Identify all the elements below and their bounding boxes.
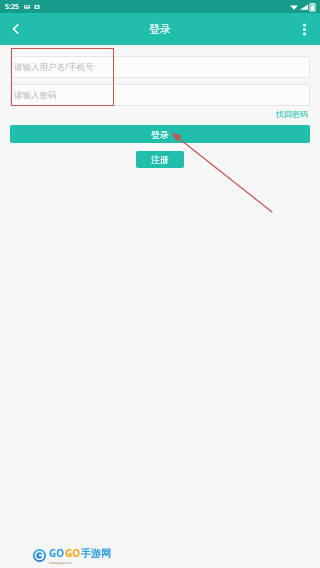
staticText: 请输入密码	[14, 90, 57, 101]
button[interactable]: 返回	[0, 13, 32, 45]
button[interactable]: 注册	[136, 151, 184, 168]
staticText: GO	[65, 546, 81, 560]
staticText: 找回密码	[276, 109, 308, 119]
button[interactable]: 更多选项	[288, 13, 320, 45]
button[interactable]: 登录	[10, 125, 310, 143]
staticText: 请输入用户名/手机号	[14, 61, 94, 73]
staticText: 登录	[151, 129, 169, 140]
button[interactable]: 请输入密码	[10, 84, 310, 106]
staticText: 登录	[149, 22, 171, 36]
button[interactable]: 请输入用户名/手机号	[10, 56, 310, 78]
staticText: GO	[49, 546, 65, 560]
staticText: 手游网	[81, 547, 111, 560]
staticText: 5:25	[5, 2, 19, 12]
staticText: 注册	[151, 154, 169, 165]
staticText: www.gogo.cn	[49, 560, 72, 565]
button[interactable]: 找回密码	[274, 108, 310, 120]
